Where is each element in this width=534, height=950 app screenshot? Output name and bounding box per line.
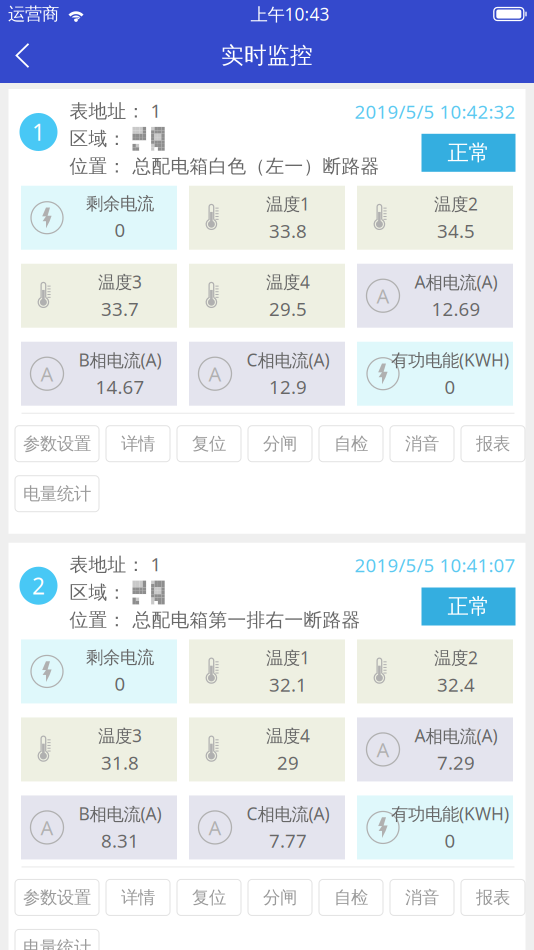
staticText: 表地址： 1 bbox=[69, 552, 161, 576]
button[interactable]: 电量统计 bbox=[15, 476, 99, 512]
staticText: 剩余电流 bbox=[86, 647, 154, 668]
button[interactable]: 电量统计 bbox=[15, 929, 99, 950]
staticText: 自检 bbox=[334, 433, 368, 454]
button[interactable]: 自检 bbox=[319, 879, 383, 915]
staticText: 详情 bbox=[121, 887, 155, 908]
staticText: 2019/5/5 10:41:07 bbox=[354, 553, 515, 577]
staticText: 温度3 bbox=[98, 724, 142, 747]
staticText: 剩余电流 bbox=[86, 193, 154, 214]
staticText: 8.31 bbox=[101, 828, 139, 853]
staticText: 分闸 bbox=[263, 887, 297, 908]
staticText: 参数设置 bbox=[23, 887, 91, 908]
button[interactable]: 消音 bbox=[390, 879, 454, 915]
staticText: 31.8 bbox=[101, 750, 139, 775]
staticText: 有功电能(KWH) bbox=[391, 348, 509, 371]
staticText: 电量统计 bbox=[23, 483, 91, 504]
staticText: A bbox=[208, 360, 221, 387]
staticText: 温度2 bbox=[434, 646, 478, 669]
staticText: 1 bbox=[32, 117, 45, 147]
staticText: 参数设置 bbox=[23, 433, 91, 454]
staticText: 29 bbox=[277, 750, 299, 775]
staticText: 温度3 bbox=[98, 270, 142, 293]
staticText: 12.9 bbox=[269, 374, 307, 399]
staticText: 14.67 bbox=[95, 374, 144, 399]
staticText: 温度1 bbox=[266, 192, 310, 215]
staticText: C相电流(A) bbox=[246, 802, 329, 825]
staticText: 报表 bbox=[476, 433, 510, 454]
staticText: 电量统计 bbox=[23, 937, 91, 950]
staticText: 温度4 bbox=[266, 724, 310, 747]
staticText: 运营商 bbox=[8, 3, 59, 25]
button[interactable]: Back bbox=[0, 29, 46, 81]
button[interactable]: 分闸 bbox=[248, 879, 312, 915]
staticText: 2019/5/5 10:42:32 bbox=[354, 99, 515, 124]
button[interactable]: 参数设置 bbox=[15, 879, 99, 915]
staticText: 温度1 bbox=[266, 646, 310, 669]
staticText: 温度4 bbox=[266, 270, 310, 293]
staticText: 区域： bbox=[69, 581, 126, 604]
staticText: 0 bbox=[114, 671, 125, 696]
staticText: 位置： 总配电箱第一排右一断路器 bbox=[69, 608, 360, 631]
staticText: 温度2 bbox=[434, 192, 478, 215]
staticText: 详情 bbox=[121, 433, 155, 454]
staticText: 消音 bbox=[405, 887, 439, 908]
button[interactable]: 分闸 bbox=[248, 426, 312, 462]
staticText: 7.29 bbox=[437, 750, 475, 775]
staticText: 正常 bbox=[447, 593, 489, 620]
staticText: 0 bbox=[114, 217, 125, 242]
staticText: 报表 bbox=[476, 887, 510, 908]
staticText: 32.1 bbox=[269, 672, 307, 697]
staticText: 复位 bbox=[192, 433, 226, 454]
button[interactable]: 复位 bbox=[177, 879, 241, 915]
staticText: 32.4 bbox=[437, 672, 475, 697]
staticText: 0 bbox=[444, 374, 455, 399]
staticText: 自检 bbox=[334, 887, 368, 908]
button[interactable]: 报表 bbox=[461, 426, 525, 462]
staticText: B相电流(A) bbox=[78, 802, 161, 825]
staticText: 区域： bbox=[69, 127, 126, 150]
staticText: A相电流(A) bbox=[414, 724, 497, 747]
staticText: A bbox=[376, 282, 389, 309]
button[interactable]: 详情 bbox=[106, 426, 170, 462]
button[interactable]: 消音 bbox=[390, 426, 454, 462]
button[interactable]: 详情 bbox=[106, 879, 170, 915]
staticText: 分闸 bbox=[263, 433, 297, 454]
staticText: B相电流(A) bbox=[78, 348, 161, 371]
staticText: 上午10:43 bbox=[250, 2, 329, 25]
staticText: 实时监控 bbox=[221, 42, 313, 69]
staticText: 29.5 bbox=[269, 296, 307, 321]
staticText: 34.5 bbox=[437, 218, 475, 243]
staticText: 2 bbox=[32, 571, 45, 601]
staticText: A bbox=[376, 736, 389, 763]
staticText: 消音 bbox=[405, 433, 439, 454]
button[interactable]: 正常 bbox=[421, 134, 515, 172]
staticText: 33.8 bbox=[269, 218, 307, 243]
button[interactable]: 正常 bbox=[421, 587, 515, 625]
staticText: 33.7 bbox=[101, 296, 139, 321]
staticText: C相电流(A) bbox=[246, 348, 329, 371]
button[interactable]: 报表 bbox=[461, 879, 525, 915]
staticText: 正常 bbox=[447, 140, 489, 166]
staticText: A bbox=[40, 360, 53, 387]
staticText: A bbox=[40, 814, 53, 841]
staticText: 12.69 bbox=[431, 296, 480, 321]
staticText: 表地址： 1 bbox=[69, 98, 161, 123]
staticText: 有功电能(KWH) bbox=[391, 802, 509, 825]
button[interactable]: 自检 bbox=[319, 426, 383, 462]
staticText: A bbox=[208, 814, 221, 841]
staticText: 位置： 总配电箱白色（左一）断路器 bbox=[69, 155, 379, 178]
staticText: A相电流(A) bbox=[414, 270, 497, 293]
staticText: 0 bbox=[444, 828, 455, 853]
staticText: 7.77 bbox=[269, 828, 307, 853]
staticText: 复位 bbox=[192, 887, 226, 908]
button[interactable]: 参数设置 bbox=[15, 426, 99, 462]
button[interactable]: 复位 bbox=[177, 426, 241, 462]
